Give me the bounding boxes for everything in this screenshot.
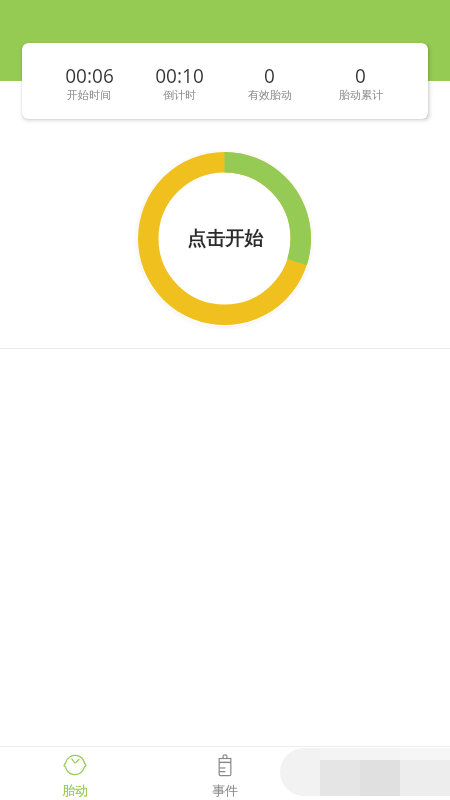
staticText: 开始时间 <box>67 88 111 102</box>
staticText: 点击开始 <box>187 227 263 251</box>
button[interactable]: 胎动 <box>0 747 150 800</box>
button[interactable]: 点击开始 <box>138 152 311 325</box>
staticText: 胎动累计 <box>339 88 383 102</box>
button[interactable]: 我的 <box>300 747 450 800</box>
staticText: 00:10 <box>155 63 204 89</box>
other: 事件 <box>214 754 236 776</box>
staticText: 0 <box>355 63 366 89</box>
button[interactable]: 事件 <box>150 747 300 800</box>
staticText: 0 <box>264 63 275 89</box>
staticText: 有效胎动 <box>248 88 292 102</box>
staticText: 倒计时 <box>163 88 196 102</box>
other: 胎动 <box>64 754 86 776</box>
staticText: 胎动 <box>62 782 88 798</box>
staticText: 事件 <box>212 782 238 798</box>
staticText: 00:06 <box>65 63 114 89</box>
